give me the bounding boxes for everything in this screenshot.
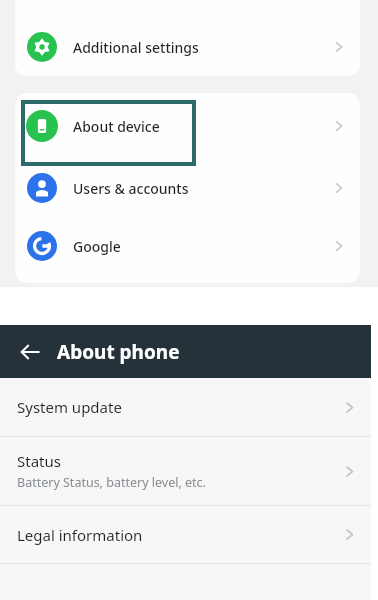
staticText: Users & accounts — [73, 179, 332, 198]
button[interactable]: Status — [0, 437, 371, 505]
staticText: Additional settings — [73, 38, 332, 57]
button[interactable]: Back — [10, 332, 50, 372]
staticText: Status — [17, 451, 61, 471]
staticText: About phone — [57, 339, 180, 365]
button[interactable]: Google — [15, 217, 360, 275]
staticText: Google — [73, 237, 332, 256]
staticText: Legal information — [17, 525, 143, 545]
button[interactable]: System update — [0, 378, 371, 436]
button[interactable]: Users & accounts — [15, 159, 360, 217]
staticText: Battery Status, battery level, etc. — [17, 474, 206, 491]
button[interactable]: Legal information — [0, 506, 371, 563]
staticText: About device — [73, 117, 332, 136]
button[interactable]: About device — [15, 93, 360, 159]
staticText: System update — [17, 397, 122, 417]
button[interactable]: Additional settings — [15, 18, 360, 76]
